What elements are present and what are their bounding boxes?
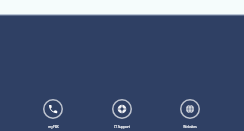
staticText: IT Support xyxy=(114,125,130,129)
button[interactable]: Websites xyxy=(162,99,218,129)
button[interactable]: myPBX xyxy=(25,99,81,129)
staticText: Websites xyxy=(183,125,197,129)
button[interactable]: IT Support xyxy=(94,99,150,129)
staticText: myPBX xyxy=(48,125,59,129)
